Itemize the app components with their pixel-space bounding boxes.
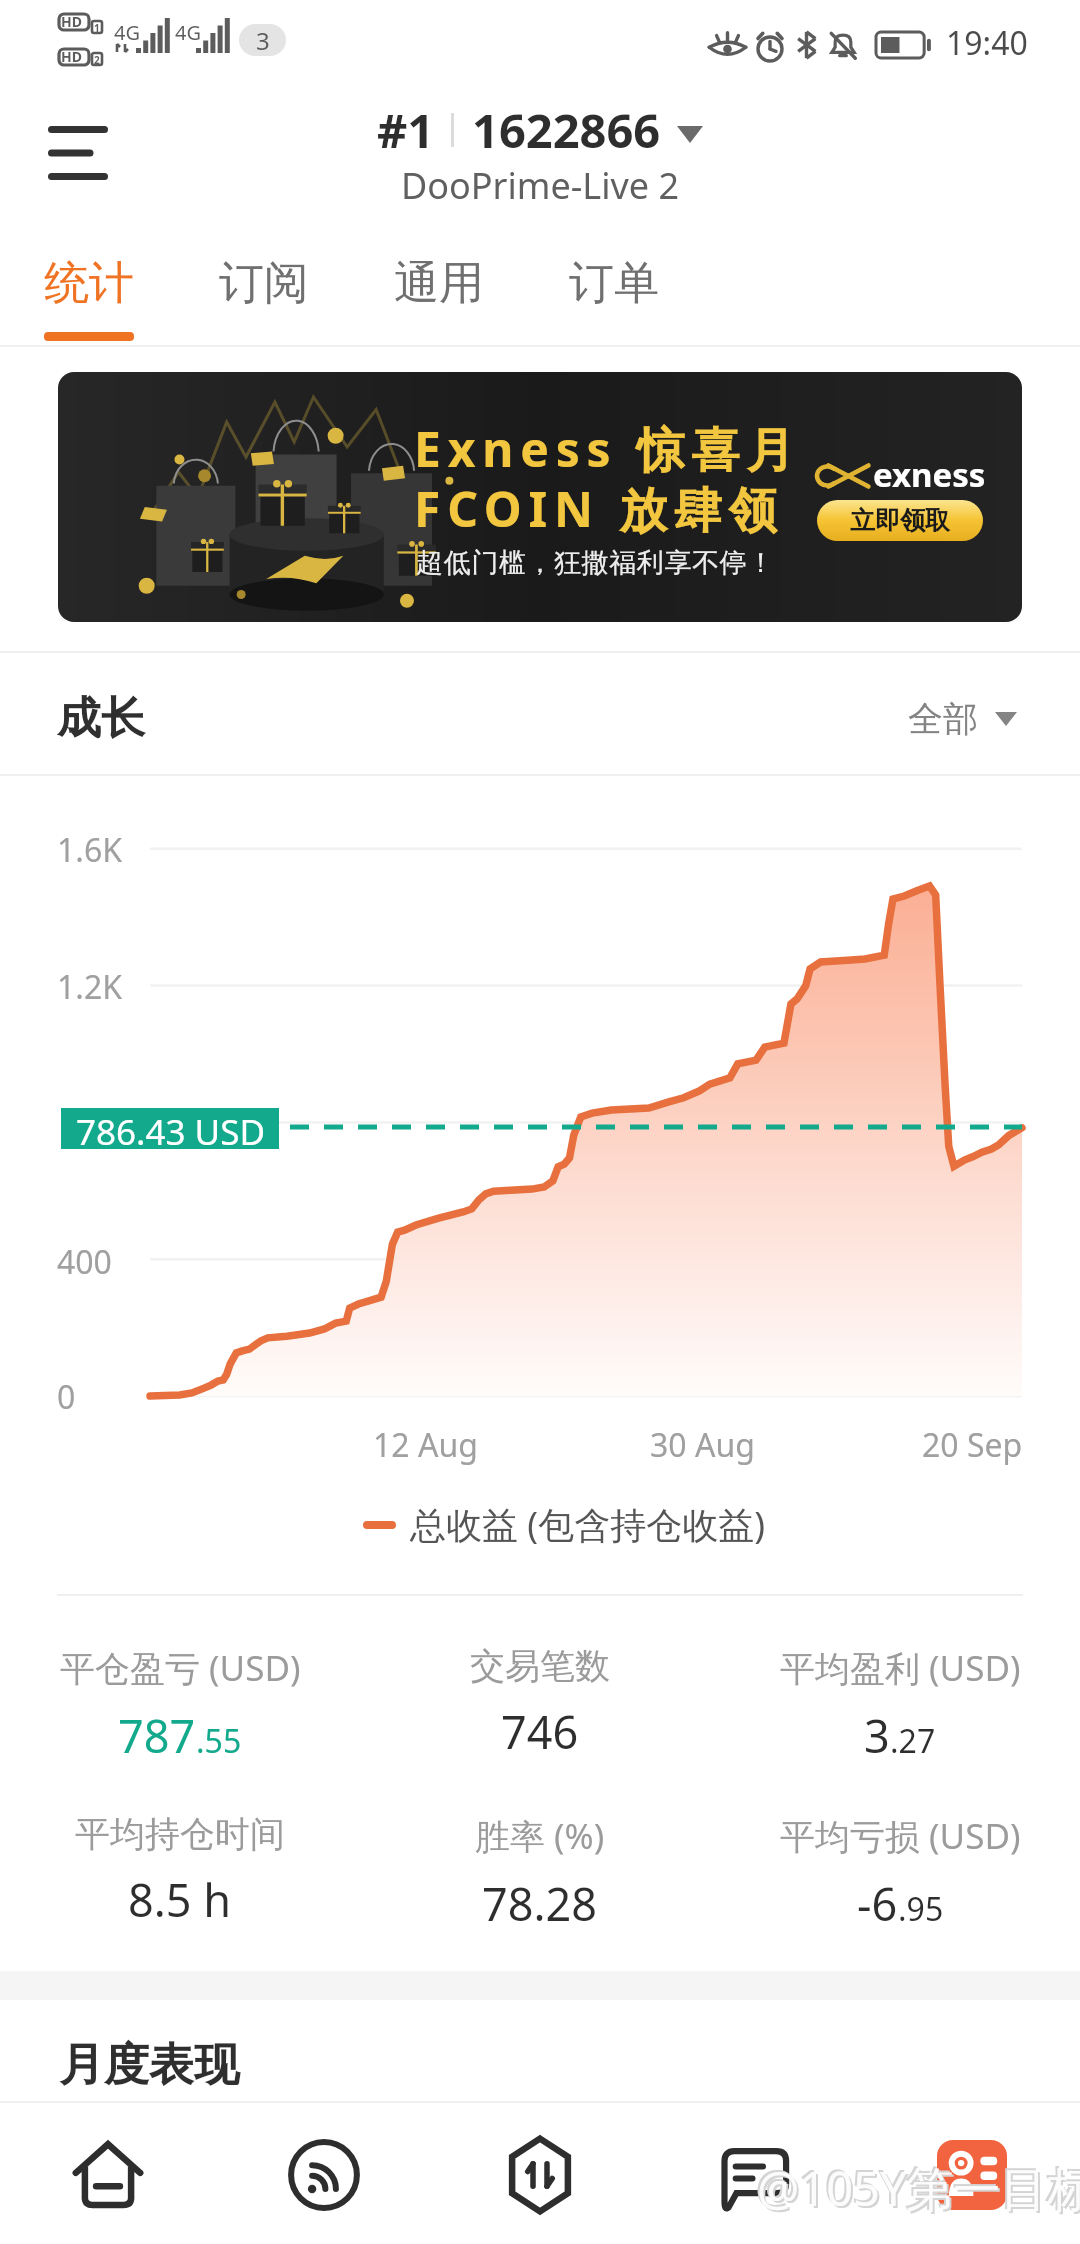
staticText: FCOIN 放肆领 [414, 476, 784, 542]
staticText: HD [61, 47, 82, 66]
staticText: 平均持仓时间 [75, 1812, 285, 1856]
button[interactable]: Signals [216, 2112, 432, 2244]
button[interactable]: 全部 [908, 697, 1017, 741]
staticText: 胜率 (%) [475, 1812, 605, 1860]
staticText: 平均盈利 (USD) [780, 1644, 1021, 1692]
button[interactable]: Trade [432, 2112, 648, 2244]
staticText: Exness 惊喜月 [414, 416, 802, 482]
staticText: 4G [114, 19, 140, 46]
staticText: 787 [118, 1705, 196, 1766]
staticText: HD [61, 12, 82, 31]
button[interactable]: Account [864, 2112, 1080, 2244]
staticText: 12 Aug [373, 1423, 478, 1467]
staticText: 1.6K [57, 828, 122, 872]
staticText: 19:40 [946, 21, 1028, 65]
staticText: 4G [175, 19, 201, 46]
button[interactable]: Exness 惊喜月 [58, 372, 1022, 622]
staticText: 3 [864, 1705, 890, 1766]
staticText: 786.43 USD [76, 1108, 265, 1149]
staticText: @105Y第一目标 [755, 2154, 1080, 2218]
staticText: #1 [377, 98, 435, 162]
button[interactable]: 订阅 [186, 238, 342, 344]
staticText: 平仓盈亏 (USD) [60, 1644, 301, 1692]
staticText: 总收益 (包含持仓收益) [410, 1500, 765, 1549]
button[interactable]: 通用 [361, 238, 517, 344]
staticText: 交易笔数 [470, 1644, 610, 1688]
staticText: exness [873, 452, 986, 497]
staticText: 78.28 [482, 1873, 598, 1934]
button[interactable]: Menu [18, 103, 138, 203]
staticText: .27 [890, 1719, 936, 1763]
staticText: .55 [196, 1719, 242, 1763]
staticText: 2 [94, 53, 100, 67]
staticText: 3 [256, 24, 270, 56]
staticText: 400 [57, 1240, 112, 1284]
button[interactable]: #1 [377, 98, 703, 211]
staticText: 1622866 [472, 98, 661, 162]
staticText: .95 [898, 1887, 944, 1931]
staticText: 通用 [394, 255, 484, 312]
button[interactable]: Home [0, 2112, 216, 2244]
staticText: 平均亏损 (USD) [780, 1812, 1021, 1860]
staticText: 8.5 h [128, 1869, 232, 1930]
button[interactable]: 统计 [11, 238, 167, 344]
staticText: 立即领取 [850, 505, 950, 536]
staticText: 746 [501, 1701, 579, 1762]
staticText: 统计 [44, 255, 134, 312]
button[interactable]: 立即领取 [817, 500, 983, 541]
staticText: -6 [857, 1873, 898, 1934]
staticText: 订阅 [219, 255, 309, 312]
staticText: 30 Aug [650, 1423, 755, 1467]
staticText: 1 [94, 21, 100, 35]
staticText: DooPrime-Live 2 [401, 161, 680, 210]
button[interactable]: 订单 [536, 238, 692, 344]
staticText: 全部 [908, 697, 978, 741]
staticText: @105Y第一目标 [759, 2158, 1080, 2222]
button[interactable]: Chat [648, 2112, 864, 2244]
staticText: 0 [57, 1375, 76, 1419]
staticText: 月度表现 [59, 2037, 239, 2094]
staticText: 成长 [57, 691, 145, 746]
staticText: 订单 [569, 255, 659, 312]
staticText: 超低门槛，狂撒福利享不停！ [416, 546, 775, 580]
staticText: 20 Sep [922, 1423, 1023, 1467]
staticText: @105Y第一目标 [757, 2156, 1080, 2220]
staticText: 1.2K [57, 965, 122, 1009]
